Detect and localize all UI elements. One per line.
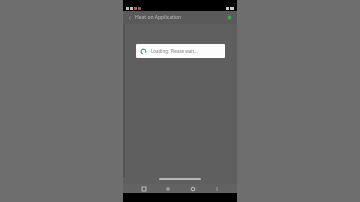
button[interactable]: Action <box>225 13 234 22</box>
button[interactable]: Back <box>126 14 134 22</box>
button[interactable]: Home <box>164 185 171 192</box>
button[interactable]: Apps <box>189 185 196 192</box>
button[interactable]: More <box>213 185 220 192</box>
button[interactable]: Recents <box>140 185 147 192</box>
staticText: Heat on Application <box>135 14 225 21</box>
staticText: Loading. Please wait... <box>151 48 198 54</box>
